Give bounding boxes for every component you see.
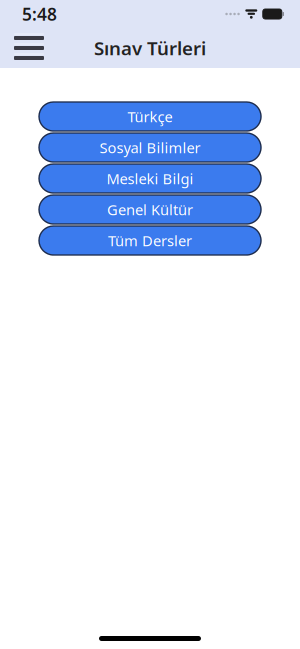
button[interactable]: Sosyal Bilimler [39,133,261,162]
staticText: Sınav Türleri [94,36,206,60]
button[interactable]: Genel Kültür [39,195,261,224]
staticText: Mesleki Bilgi [106,169,193,188]
staticText: Genel Kültür [107,200,193,219]
button[interactable]: Mesleki Bilgi [39,164,261,193]
button[interactable]: Türkçe [39,102,261,131]
staticText: Tüm Dersler [108,231,192,250]
staticText: 5:48 [22,2,57,25]
button[interactable]: Menu [9,28,49,68]
staticText: Sosyal Bilimler [99,138,200,157]
button[interactable]: Tüm Dersler [39,226,261,255]
staticText: Türkçe [127,107,172,126]
